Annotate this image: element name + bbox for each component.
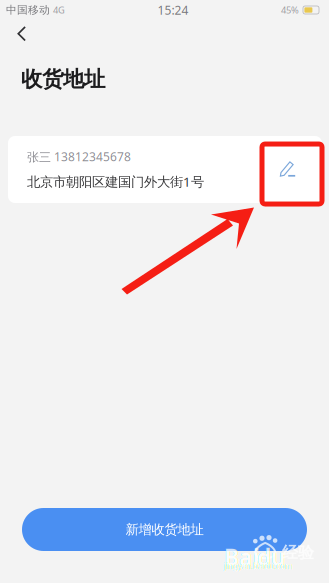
staticText: Bai: [224, 542, 260, 572]
staticText: 中国移动: [6, 3, 50, 16]
button[interactable]: 新增收货地址: [22, 508, 307, 551]
staticText: 新增收货地址: [125, 521, 203, 538]
staticText: 45%: [281, 4, 299, 16]
staticText: 4G: [53, 4, 65, 16]
staticText: du: [257, 542, 286, 572]
staticText: jingyan.baidu.com: [224, 561, 292, 571]
staticText: 15:24: [157, 2, 188, 18]
staticText: 北京市朝阳区建国门外大街1号: [27, 173, 204, 190]
staticText: 经验: [282, 543, 314, 563]
staticText: 张三 13812345678: [27, 149, 131, 165]
button[interactable]: 返回: [5, 18, 39, 50]
button[interactable]: 编辑地址: [264, 145, 312, 193]
staticText: 收货地址: [21, 66, 105, 92]
